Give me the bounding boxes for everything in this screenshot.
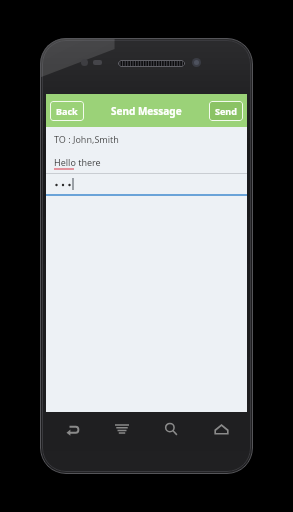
staticText: TO : John,Smith xyxy=(54,133,119,145)
button[interactable]: TO : John,Smith xyxy=(46,127,247,151)
staticText: Send Message xyxy=(111,104,182,118)
staticText: Back xyxy=(56,105,78,117)
button[interactable]: Search xyxy=(154,412,188,446)
button[interactable]: Back xyxy=(55,412,89,446)
button[interactable]: Back xyxy=(50,101,84,121)
button[interactable] xyxy=(46,174,247,194)
staticText: Hello there xyxy=(54,156,101,168)
button[interactable]: Hello there xyxy=(46,151,247,173)
button[interactable]: Send xyxy=(209,101,243,121)
button[interactable]: Home xyxy=(204,412,238,446)
staticText: Send xyxy=(215,105,237,117)
button[interactable]: Menu xyxy=(105,412,139,446)
